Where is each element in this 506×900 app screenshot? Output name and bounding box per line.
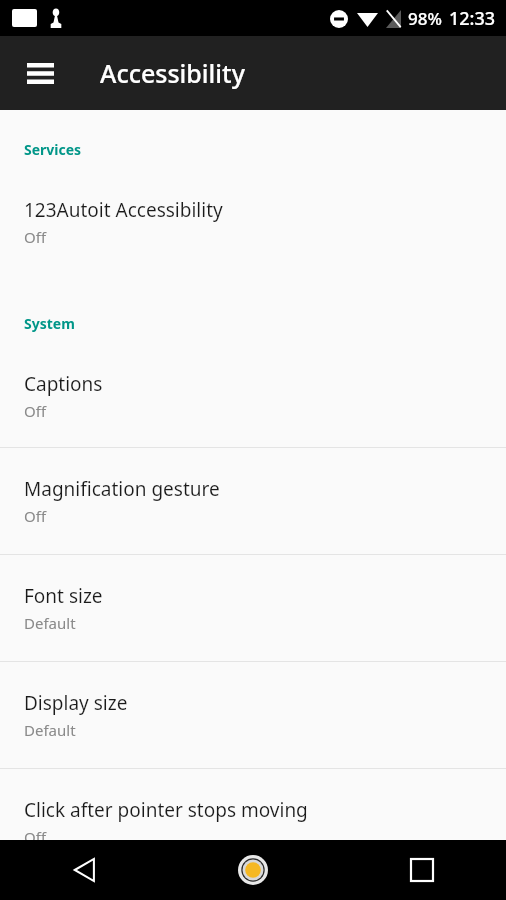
staticText: Accessibility (100, 56, 245, 90)
button[interactable]: 123Autoit Accessibility (0, 159, 506, 273)
button[interactable]: Click after pointer stops moving (0, 769, 506, 875)
button[interactable]: Magnification gesture (0, 448, 506, 554)
button[interactable]: Recent apps (337, 840, 506, 900)
button[interactable]: Display size (0, 662, 506, 768)
staticText: Off (24, 401, 47, 421)
staticText: Default (24, 720, 76, 740)
staticText: Font size (24, 583, 103, 609)
staticText: 98% (408, 7, 442, 30)
staticText: Default (24, 613, 76, 633)
staticText: Captions (24, 371, 103, 397)
button[interactable]: Back (0, 840, 168, 900)
staticText: Off (24, 227, 47, 247)
button[interactable]: Open navigation drawer (14, 47, 66, 99)
staticText: 123Autoit Accessibility (24, 197, 223, 223)
staticText: Click after pointer stops moving (24, 797, 308, 823)
staticText: System (24, 314, 506, 333)
button[interactable]: Font size (0, 555, 506, 661)
button[interactable]: Captions (0, 333, 506, 447)
staticText: Services (24, 140, 506, 159)
button[interactable]: Home (168, 840, 337, 900)
staticText: Off (24, 506, 47, 526)
staticText: Off (24, 827, 47, 847)
staticText: 12:33 (449, 6, 496, 31)
staticText: Display size (24, 690, 128, 716)
staticText: Magnification gesture (24, 476, 220, 502)
